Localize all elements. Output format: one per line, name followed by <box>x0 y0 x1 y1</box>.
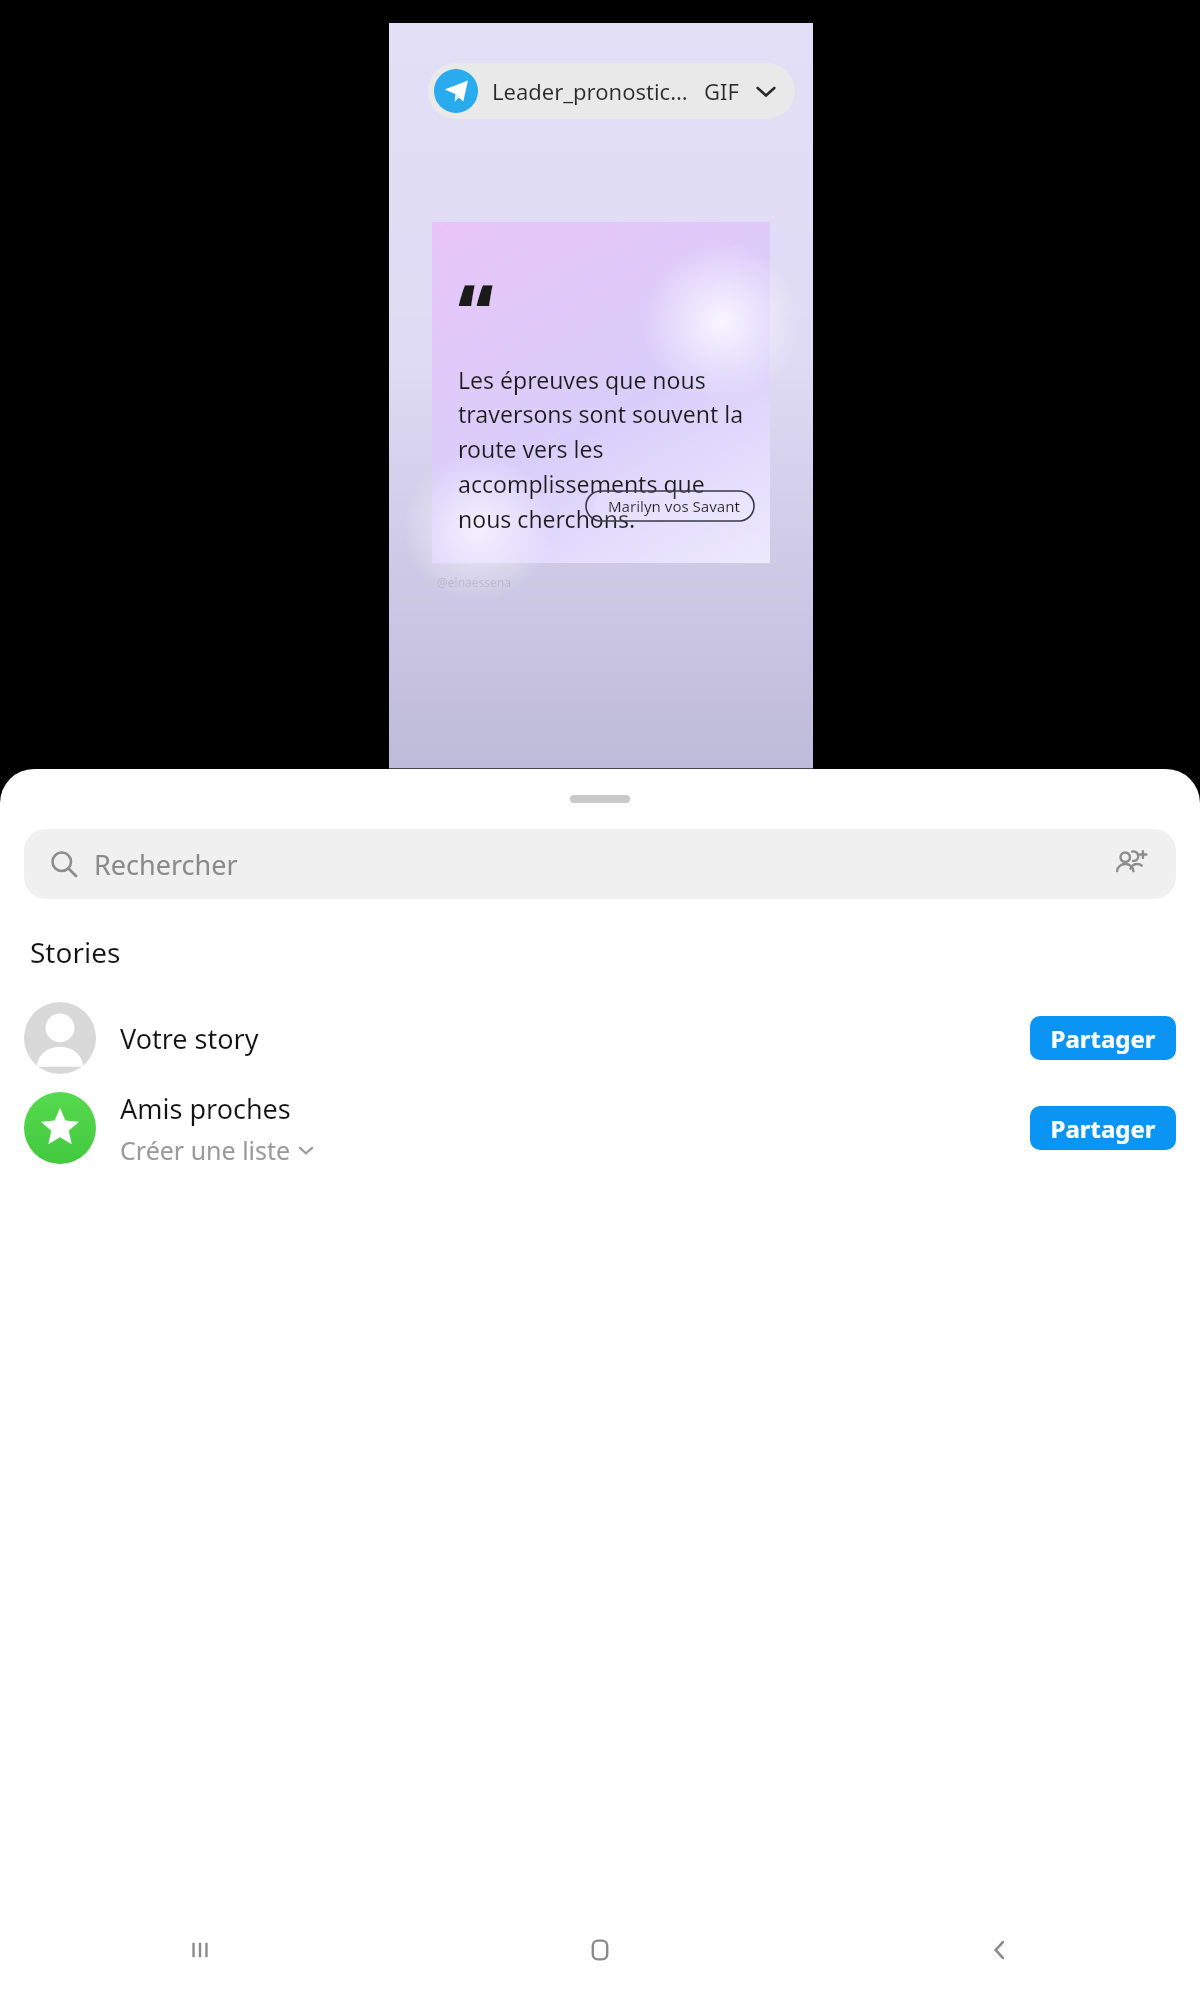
button[interactable]: Recents <box>0 1900 400 2000</box>
other: Search <box>50 850 78 878</box>
staticText: Marilyn vos Savant <box>608 496 740 516</box>
button[interactable]: Home <box>400 1900 800 2000</box>
staticText: Amis proches <box>120 1090 291 1127</box>
staticText: Partager <box>1050 1022 1156 1055</box>
staticText: Créer une liste <box>120 1133 291 1167</box>
button[interactable]: Search <box>24 829 1176 899</box>
staticText: GIF <box>704 76 739 106</box>
button[interactable]: Add people <box>1110 844 1150 884</box>
button[interactable]: Votre story <box>0 993 1200 1083</box>
staticText: Rechercher <box>94 846 238 883</box>
staticText: Les épreuves que nous traversons sont so… <box>458 364 748 535</box>
button[interactable]: Amis proches <box>0 1083 1200 1173</box>
staticText: @elnaessena <box>437 574 511 590</box>
button[interactable]: Partager <box>1030 1016 1176 1060</box>
button[interactable]: Leader_pronostic… <box>428 63 795 119</box>
button[interactable]: Back <box>800 1900 1200 2000</box>
staticText: Partager <box>1050 1112 1156 1145</box>
staticText: Votre story <box>120 1020 259 1057</box>
button[interactable]: Partager <box>1030 1106 1176 1150</box>
staticText: Leader_pronostic… <box>492 76 688 106</box>
staticText: Stories <box>30 933 121 971</box>
staticText: “ <box>458 260 494 358</box>
